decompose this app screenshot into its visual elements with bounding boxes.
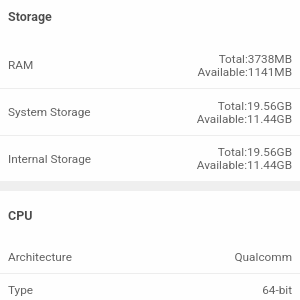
button[interactable]: RAM xyxy=(0,42,300,88)
staticText: Storage xyxy=(8,9,52,24)
staticText: Total:19.56GB Available:11.44GB xyxy=(196,99,292,126)
staticText: Total:19.56GB Available:11.44GB xyxy=(196,145,292,172)
staticText: 64-bit xyxy=(262,283,292,297)
staticText: Total:3738MB Available:1141MB xyxy=(197,52,292,79)
button[interactable]: System Storage xyxy=(0,89,300,135)
staticText: Internal Storage xyxy=(8,152,92,166)
staticText: Qualcomm xyxy=(234,250,292,264)
button[interactable]: Architecture xyxy=(0,241,300,273)
staticText: CPU xyxy=(8,208,33,223)
button[interactable]: Internal Storage xyxy=(0,136,300,181)
button[interactable]: Type xyxy=(0,274,300,300)
staticText: Architecture xyxy=(8,250,72,264)
staticText: Type xyxy=(8,283,34,297)
staticText: System Storage xyxy=(8,105,91,119)
staticText: RAM xyxy=(8,58,34,72)
